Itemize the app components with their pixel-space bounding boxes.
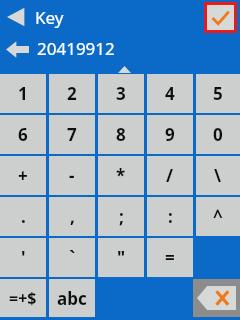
- button[interactable]: /: [147, 156, 193, 195]
- staticText: :: [168, 205, 173, 228]
- staticText: \: [214, 164, 222, 187]
- staticText: 4: [165, 82, 175, 105]
- staticText: Key: [35, 6, 64, 29]
- staticText: 0: [213, 123, 223, 146]
- staticText: abc: [57, 287, 87, 310]
- button[interactable]: Previous: [3, 38, 31, 60]
- button[interactable]: :: [147, 197, 193, 236]
- staticText: *: [116, 164, 126, 187]
- staticText: ^: [213, 205, 223, 228]
- staticText: /: [166, 164, 174, 187]
- button[interactable]: abc: [49, 279, 95, 317]
- staticText: 20419912: [37, 37, 115, 60]
- staticText: -: [69, 164, 75, 187]
- staticText: 2: [67, 82, 77, 105]
- button[interactable]: -: [49, 156, 95, 195]
- button[interactable]: Back: [3, 6, 31, 28]
- button[interactable]: ': [0, 238, 46, 277]
- button[interactable]: 1: [0, 74, 46, 113]
- staticText: 9: [165, 123, 175, 146]
- button[interactable]: =+$: [0, 279, 46, 317]
- staticText: ;: [119, 205, 124, 228]
- staticText: =: [165, 246, 175, 269]
- staticText: 8: [116, 123, 126, 146]
- staticText: .: [21, 205, 26, 228]
- button[interactable]: 9: [147, 115, 193, 154]
- button[interactable]: 0: [196, 115, 240, 154]
- staticText: ,: [70, 205, 75, 228]
- staticText: 3: [116, 82, 126, 105]
- button[interactable]: Confirm: [207, 5, 234, 30]
- button[interactable]: \: [196, 156, 240, 195]
- button[interactable]: 5: [196, 74, 240, 113]
- staticText: 5: [213, 82, 223, 105]
- staticText: 1: [18, 82, 28, 105]
- button[interactable]: 8: [98, 115, 144, 154]
- button[interactable]: 6: [0, 115, 46, 154]
- button[interactable]: 7: [49, 115, 95, 154]
- staticText: `: [69, 246, 76, 269]
- button[interactable]: ;: [98, 197, 144, 236]
- button[interactable]: ,: [49, 197, 95, 236]
- button[interactable]: =: [147, 238, 193, 277]
- button[interactable]: `: [49, 238, 95, 277]
- staticText: ': [21, 246, 26, 269]
- button[interactable]: ^: [196, 197, 240, 236]
- staticText: 7: [67, 123, 77, 146]
- button[interactable]: .: [0, 197, 46, 236]
- button[interactable]: *: [98, 156, 144, 195]
- staticText: +: [18, 164, 28, 187]
- staticText: =+$: [9, 287, 37, 309]
- button[interactable]: 3: [98, 74, 144, 113]
- button[interactable]: ": [98, 238, 144, 277]
- button[interactable]: 4: [147, 74, 193, 113]
- staticText: 6: [18, 123, 28, 146]
- button[interactable]: 2: [49, 74, 95, 113]
- button[interactable]: Backspace: [193, 279, 240, 317]
- staticText: ": [117, 246, 126, 269]
- button[interactable]: +: [0, 156, 46, 195]
